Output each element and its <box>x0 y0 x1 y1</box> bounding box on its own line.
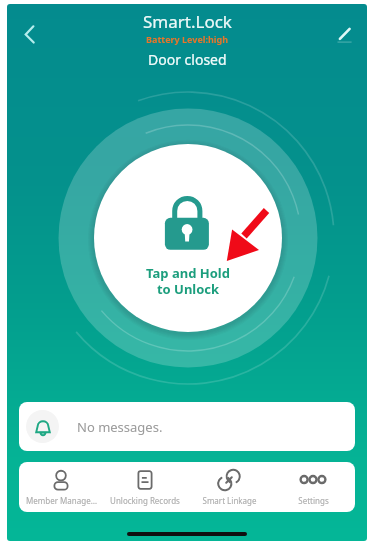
staticText: Member Manage… <box>26 495 97 506</box>
button[interactable]: No messages. <box>19 402 355 451</box>
staticText: Tap and Hold to Unlock <box>146 264 230 297</box>
staticText: Settings <box>298 495 329 506</box>
staticText: Battery Level:high <box>146 33 229 45</box>
button[interactable]: Edit <box>325 15 364 54</box>
staticText: Smart Linkage <box>202 495 257 506</box>
button[interactable]: Member Manage… <box>19 462 103 512</box>
staticText: Unlocking Records <box>110 495 180 506</box>
staticText: No messages. <box>77 418 163 436</box>
staticText: Door closed <box>148 50 227 69</box>
button[interactable] <box>28 78 348 398</box>
button[interactable]: Smart Linkage <box>187 462 271 512</box>
button[interactable]: Settings <box>271 462 355 512</box>
button[interactable]: Back <box>10 15 49 54</box>
staticText: Smart.Lock <box>143 10 232 33</box>
button[interactable]: Unlocking Records <box>103 462 187 512</box>
